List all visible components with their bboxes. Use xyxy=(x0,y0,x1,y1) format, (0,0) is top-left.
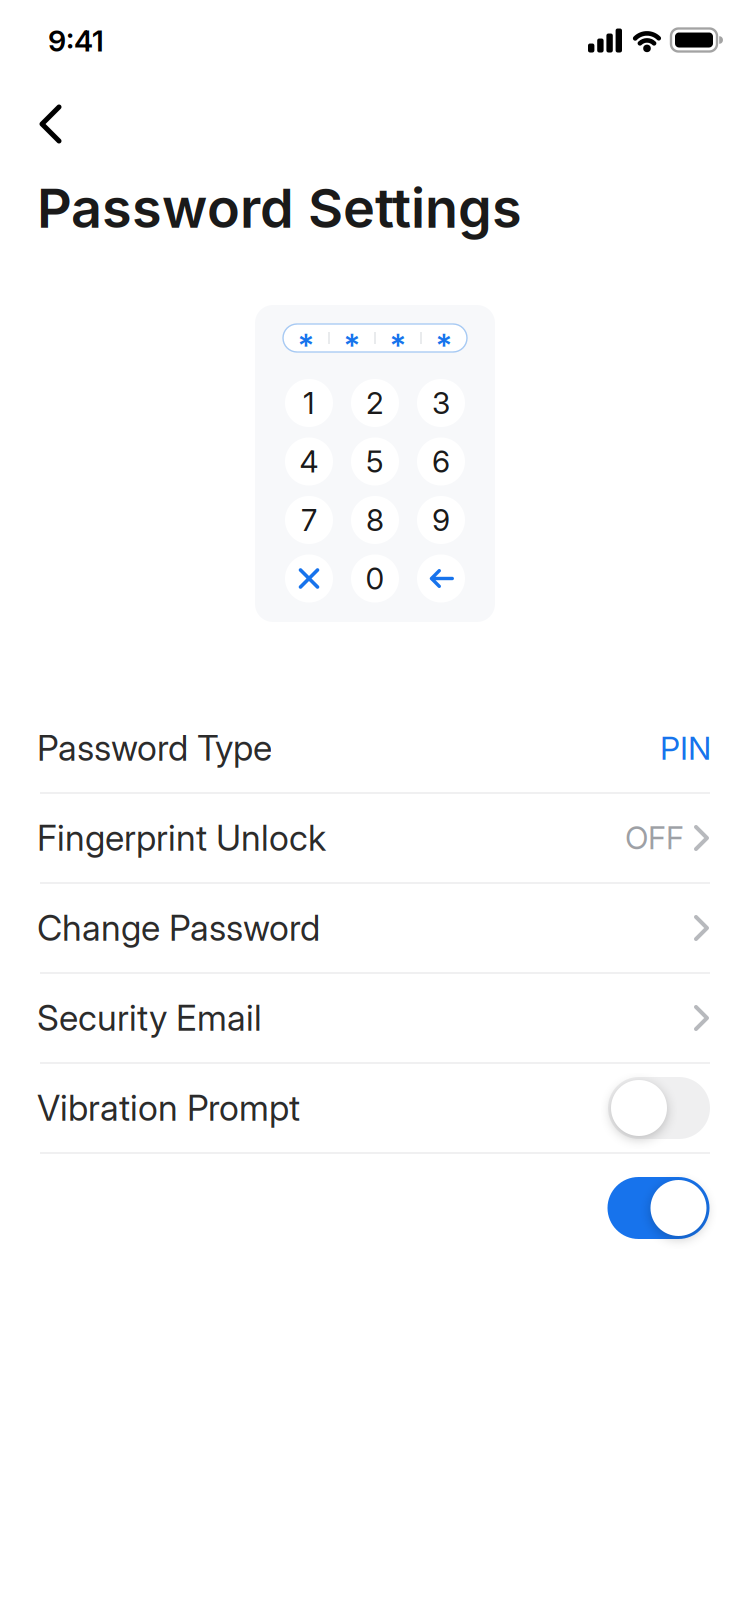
staticText: 9:41 xyxy=(48,23,104,59)
button[interactable]: 2 xyxy=(351,379,399,427)
staticText: * xyxy=(297,326,314,364)
button[interactable]: Cancel xyxy=(285,554,333,602)
staticText: Change Password xyxy=(37,907,320,949)
button[interactable]: Change Password xyxy=(0,883,750,973)
staticText: 5 xyxy=(366,443,384,480)
button[interactable]: Security Email xyxy=(0,973,750,1063)
button[interactable]: Fingerprint Unlock xyxy=(0,793,750,883)
button[interactable]: Back xyxy=(30,101,74,147)
button[interactable]: 7 xyxy=(285,496,333,544)
staticText: 1 xyxy=(303,385,315,421)
staticText: OFF xyxy=(625,819,684,857)
staticText: 8 xyxy=(366,502,384,538)
staticText: * xyxy=(389,326,406,364)
button[interactable]: Delete xyxy=(417,554,465,602)
staticText: 2 xyxy=(366,385,384,421)
staticText: Fingerprint Unlock xyxy=(37,817,326,859)
staticText: PIN xyxy=(660,729,711,767)
button[interactable]: 6 xyxy=(417,437,465,485)
staticText: * xyxy=(343,326,360,364)
staticText: 3 xyxy=(432,385,450,421)
button[interactable]: Vibration Prompt xyxy=(608,1077,710,1139)
staticText: 7 xyxy=(301,502,317,538)
button[interactable]: 4 xyxy=(285,437,333,485)
staticText: 9 xyxy=(432,502,450,538)
button[interactable]: 1 xyxy=(285,379,333,427)
staticText: 0 xyxy=(365,560,384,597)
staticText: Password Settings xyxy=(37,175,522,241)
button[interactable]: Password Type xyxy=(0,703,750,793)
staticText: Password Type xyxy=(37,727,272,769)
staticText: * xyxy=(435,326,452,364)
button[interactable]: 0 xyxy=(351,554,399,602)
button[interactable]: Toggle xyxy=(607,1177,709,1239)
button[interactable]: 9 xyxy=(417,496,465,544)
button[interactable]: 3 xyxy=(417,379,465,427)
staticText: 4 xyxy=(299,443,318,480)
staticText: 6 xyxy=(432,443,450,480)
button[interactable]: 8 xyxy=(351,496,399,544)
staticText: Security Email xyxy=(37,997,262,1039)
staticText: Vibration Prompt xyxy=(37,1087,300,1129)
button[interactable]: 5 xyxy=(351,437,399,485)
